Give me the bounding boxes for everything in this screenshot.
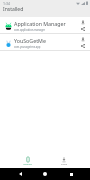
button[interactable]: Share — [80, 43, 86, 49]
button[interactable]: Back — [14, 168, 26, 180]
button[interactable]: Installed — [19, 157, 36, 166]
staticText: Installed — [23, 163, 32, 166]
button[interactable]: Saved — [55, 157, 72, 166]
button[interactable]: YouSoGetMe — [0, 34, 90, 51]
button[interactable]: Application Manager — [0, 17, 90, 34]
button[interactable]: Home — [39, 168, 51, 180]
staticText: com.application.manager — [14, 28, 46, 32]
button[interactable]: Install — [80, 36, 86, 42]
staticText: 1:34 — [3, 1, 10, 6]
staticText: Installed — [3, 6, 24, 13]
staticText: com.yousogetme.app — [14, 45, 41, 49]
button[interactable]: Recent apps — [65, 168, 77, 180]
staticText: Saved — [61, 163, 67, 166]
button[interactable]: Share — [80, 26, 86, 32]
staticText: YouSoGetMe — [14, 37, 46, 44]
staticText: Application Manager — [14, 20, 66, 27]
button[interactable]: Install — [80, 19, 86, 25]
